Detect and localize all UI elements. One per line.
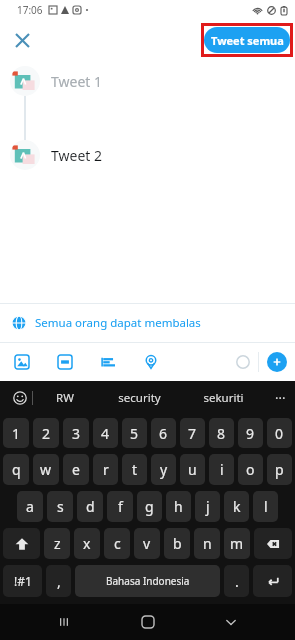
button[interactable]: , bbox=[46, 565, 71, 597]
button[interactable]: m bbox=[224, 528, 250, 559]
button[interactable]: 0 bbox=[267, 418, 292, 448]
button[interactable]: Add tweet bbox=[267, 352, 287, 372]
button[interactable]: Add location bbox=[129, 343, 172, 381]
staticText: e bbox=[72, 460, 80, 479]
button[interactable]: Tweet 1 bbox=[0, 60, 295, 102]
staticText: w bbox=[40, 460, 52, 479]
button[interactable]: !#1 bbox=[3, 565, 42, 597]
button[interactable]: u bbox=[180, 454, 205, 485]
button[interactable]: f bbox=[107, 491, 133, 522]
button[interactable]: Home bbox=[128, 604, 168, 640]
button[interactable]: Bahasa Indonesia bbox=[75, 565, 220, 597]
button[interactable]: 3 bbox=[63, 418, 89, 448]
staticText: g bbox=[145, 497, 154, 516]
button[interactable]: i bbox=[209, 454, 234, 485]
button[interactable]: w bbox=[33, 454, 59, 485]
staticText: 3 bbox=[72, 424, 81, 443]
staticText: Bahasa Indonesia bbox=[106, 574, 190, 588]
staticText: sekuriti bbox=[203, 390, 244, 406]
staticText: j bbox=[206, 497, 210, 516]
button[interactable]: . bbox=[224, 565, 249, 597]
staticText: q bbox=[12, 460, 21, 479]
staticText: z bbox=[54, 534, 61, 553]
staticText: x bbox=[83, 534, 91, 553]
staticText: n bbox=[203, 534, 212, 553]
button[interactable]: sekuriti bbox=[181, 381, 265, 415]
staticText: d bbox=[86, 497, 95, 516]
staticText: Tweet 2 bbox=[51, 146, 103, 165]
button[interactable]: Enter bbox=[253, 565, 292, 597]
button[interactable]: RW bbox=[33, 381, 97, 415]
button[interactable]: Add GIF bbox=[43, 343, 86, 381]
staticText: 0 bbox=[275, 424, 284, 443]
staticText: Tweet semua bbox=[211, 33, 284, 48]
staticText: m bbox=[230, 534, 244, 553]
button[interactable]: j bbox=[195, 491, 220, 522]
button[interactable]: d bbox=[77, 491, 103, 522]
button[interactable]: c bbox=[104, 528, 130, 559]
staticText: f bbox=[118, 497, 123, 516]
button[interactable]: y bbox=[151, 454, 176, 485]
button[interactable]: v bbox=[134, 528, 160, 559]
staticText: 9 bbox=[246, 424, 255, 443]
button[interactable]: Semua orang dapat membalas bbox=[0, 304, 295, 342]
button[interactable]: 4 bbox=[93, 418, 118, 448]
staticText: RW bbox=[56, 390, 74, 406]
button[interactable]: e bbox=[63, 454, 89, 485]
button[interactable]: 5 bbox=[122, 418, 147, 448]
button[interactable]: 1 bbox=[3, 418, 29, 448]
button[interactable]: q bbox=[3, 454, 29, 485]
button[interactable]: s bbox=[47, 491, 73, 522]
staticText: 17:06 bbox=[17, 3, 43, 17]
staticText: !#1 bbox=[14, 573, 32, 589]
staticText: . bbox=[235, 572, 239, 591]
staticText: b bbox=[173, 534, 182, 553]
staticText: 1 bbox=[12, 424, 21, 443]
button[interactable]: n bbox=[194, 528, 220, 559]
button[interactable]: h bbox=[166, 491, 191, 522]
button[interactable]: l bbox=[253, 491, 278, 522]
button[interactable]: 8 bbox=[209, 418, 234, 448]
button[interactable]: a bbox=[17, 491, 43, 522]
button[interactable]: p bbox=[267, 454, 292, 485]
button[interactable]: r bbox=[93, 454, 118, 485]
button[interactable]: 2 bbox=[33, 418, 59, 448]
staticText: l bbox=[264, 497, 268, 516]
staticText: o bbox=[246, 460, 255, 479]
button[interactable]: o bbox=[238, 454, 263, 485]
button[interactable]: Back bbox=[211, 604, 251, 640]
button[interactable]: b bbox=[164, 528, 190, 559]
staticText: , bbox=[57, 572, 61, 591]
button[interactable]: Shift bbox=[3, 528, 40, 559]
staticText: u bbox=[188, 460, 197, 479]
button[interactable]: 6 bbox=[151, 418, 176, 448]
button[interactable]: k bbox=[224, 491, 249, 522]
button[interactable]: Character count bbox=[228, 347, 258, 377]
button[interactable]: t bbox=[122, 454, 147, 485]
button[interactable]: z bbox=[44, 528, 70, 559]
button[interactable]: security bbox=[97, 381, 181, 415]
button[interactable]: Tweet semua bbox=[204, 27, 290, 53]
staticText: 5 bbox=[130, 424, 139, 443]
button[interactable]: More suggestions bbox=[265, 381, 295, 415]
button[interactable]: Emoji bbox=[8, 386, 32, 410]
button[interactable]: 7 bbox=[180, 418, 205, 448]
staticText: a bbox=[26, 497, 34, 516]
staticText: h bbox=[174, 497, 183, 516]
button[interactable]: Add poll bbox=[86, 343, 129, 381]
button[interactable]: Recents bbox=[44, 604, 84, 640]
staticText: security bbox=[118, 390, 161, 406]
staticText: c bbox=[114, 534, 121, 553]
button[interactable]: 9 bbox=[238, 418, 263, 448]
button[interactable]: Add photo bbox=[0, 343, 43, 381]
button[interactable]: g bbox=[137, 491, 162, 522]
button[interactable]: Backspace bbox=[254, 528, 292, 559]
staticText: k bbox=[233, 497, 241, 516]
staticText: v bbox=[143, 534, 151, 553]
button[interactable]: x bbox=[74, 528, 100, 559]
button[interactable]: Tweet 2 bbox=[0, 134, 295, 176]
button[interactable]: Close bbox=[6, 24, 38, 56]
staticText: 8 bbox=[217, 424, 226, 443]
staticText: t bbox=[132, 460, 138, 479]
staticText: 2 bbox=[42, 424, 51, 443]
